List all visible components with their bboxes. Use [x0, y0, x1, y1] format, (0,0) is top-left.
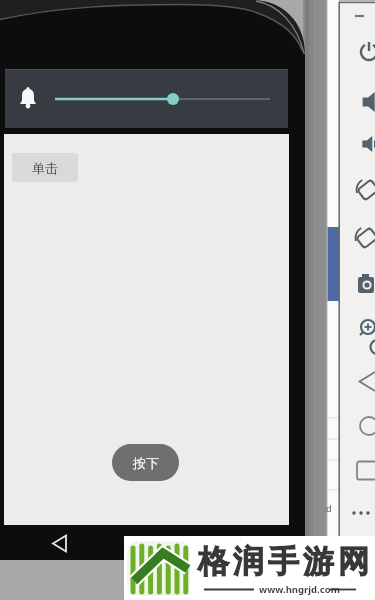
staticText: www.hngrjd.com [259, 583, 340, 596]
button[interactable]: 按下 [112, 444, 179, 481]
staticText: 按下 [133, 455, 159, 471]
button[interactable] [354, 178, 375, 202]
button[interactable] [354, 225, 375, 251]
button[interactable] [356, 368, 375, 392]
button[interactable] [356, 91, 375, 113]
button[interactable] [357, 316, 375, 338]
button[interactable] [352, 6, 368, 20]
staticText: d [326, 502, 332, 514]
button[interactable] [356, 40, 375, 62]
button[interactable] [356, 272, 375, 296]
button[interactable]: 单击 [12, 153, 78, 182]
staticText: 格润手游网 [196, 542, 371, 581]
button[interactable] [355, 459, 375, 482]
button[interactable] [42, 528, 76, 558]
staticText: 单击 [32, 160, 58, 176]
button[interactable] [357, 415, 375, 437]
button[interactable] [356, 133, 375, 155]
button[interactable] [351, 506, 371, 520]
